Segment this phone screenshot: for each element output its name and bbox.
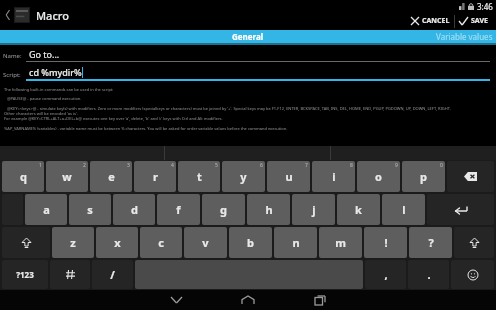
button[interactable]: h	[247, 194, 290, 225]
staticText: 6	[260, 162, 263, 169]
staticText: @PAUSE@ - pause command execution.	[7, 96, 82, 101]
button[interactable]: /	[92, 260, 133, 289]
staticText: l	[402, 202, 406, 217]
staticText: z	[70, 235, 76, 250]
button[interactable]: Backspace	[447, 161, 494, 192]
button[interactable]: ?	[409, 227, 452, 258]
button[interactable]: l	[382, 194, 425, 225]
staticText: r	[153, 169, 158, 184]
button[interactable]: t	[178, 161, 220, 192]
staticText: d	[131, 202, 138, 217]
button[interactable]: a	[25, 194, 67, 225]
button[interactable]: w	[46, 161, 88, 192]
button[interactable]: SAVE	[455, 14, 492, 28]
button[interactable]: d	[113, 194, 155, 225]
staticText: CANCEL	[422, 16, 450, 26]
button[interactable]: x	[96, 227, 138, 258]
staticText: ?123	[16, 269, 34, 280]
button[interactable]: Variable values	[436, 31, 496, 42]
staticText: @KEY=<keys>@ - simulate key(s) with modi…	[7, 106, 451, 111]
button[interactable]: Enter	[427, 194, 494, 225]
staticText: SAVE	[471, 16, 488, 26]
staticText: Name:	[3, 52, 26, 60]
button[interactable]: n	[274, 227, 317, 258]
button[interactable]: Shift	[454, 227, 494, 258]
button[interactable]: p	[402, 161, 445, 192]
button[interactable]: .	[408, 260, 449, 289]
button[interactable]: z	[52, 227, 94, 258]
staticText: Go to...	[29, 48, 60, 60]
button[interactable]: c	[140, 227, 182, 258]
staticText: ,	[384, 267, 388, 282]
button[interactable]: i	[312, 161, 355, 192]
button[interactable]: Recents	[307, 290, 333, 310]
button[interactable]: s	[69, 194, 111, 225]
button[interactable]: Back	[2, 2, 14, 28]
staticText: ?	[428, 235, 434, 250]
button[interactable]: k	[337, 194, 380, 225]
staticText: s	[87, 202, 93, 217]
staticText: For example @KEY=CTRL+ALT+a+DEL+b@ execu…	[4, 116, 223, 121]
staticText: /	[110, 267, 115, 282]
staticText: y	[240, 169, 247, 184]
staticText: w	[62, 169, 72, 184]
staticText: o	[375, 169, 382, 184]
staticText: c	[158, 235, 164, 250]
staticText: 8	[350, 162, 353, 169]
button[interactable]: r	[134, 161, 176, 192]
staticText: i	[332, 169, 336, 184]
button[interactable]: g	[202, 194, 245, 225]
button[interactable]: CANCEL	[407, 14, 454, 28]
button[interactable]: q	[2, 161, 44, 192]
staticText: 9	[395, 162, 398, 169]
button[interactable]: e	[90, 161, 132, 192]
staticText: v	[202, 235, 209, 250]
button[interactable]: Hide keyboard	[163, 290, 189, 310]
button[interactable]: y	[222, 161, 265, 192]
staticText: cd %mydir%	[29, 66, 82, 78]
staticText: 4	[171, 162, 174, 169]
button[interactable]: u	[267, 161, 310, 192]
staticText: t	[197, 169, 202, 184]
button[interactable]: o	[357, 161, 400, 192]
staticText: !	[384, 235, 388, 250]
staticText: a	[43, 202, 50, 217]
staticText: n	[292, 235, 300, 250]
staticText: e	[108, 169, 115, 184]
button[interactable]: Shift	[2, 227, 50, 258]
staticText: 2	[83, 162, 86, 169]
button[interactable]: m	[319, 227, 362, 258]
button[interactable]: ?123	[2, 260, 48, 289]
staticText: u	[285, 169, 293, 184]
button[interactable]: Change language	[50, 260, 90, 289]
staticText: Script:	[3, 71, 26, 79]
staticText: k	[355, 202, 362, 217]
button[interactable]: b	[229, 227, 272, 258]
button[interactable]: Emoji	[451, 260, 494, 289]
button[interactable]: cd %mydir%	[26, 66, 490, 81]
staticText: j	[312, 202, 316, 217]
button[interactable]: ,	[365, 260, 406, 289]
staticText: h	[265, 202, 273, 217]
staticText: 0	[440, 162, 443, 169]
button[interactable]: General	[232, 31, 264, 42]
staticText: g	[220, 202, 227, 217]
staticText: p	[420, 169, 427, 184]
button[interactable]: Home	[235, 290, 261, 310]
staticText: 5	[215, 162, 218, 169]
staticText: b	[247, 235, 254, 250]
button[interactable]: j	[292, 194, 335, 225]
button[interactable]: v	[184, 227, 227, 258]
staticText: q	[20, 169, 27, 184]
staticText: 1	[39, 162, 42, 169]
staticText: Macro	[36, 8, 69, 23]
button[interactable]: !	[364, 227, 407, 258]
button[interactable]: f	[157, 194, 200, 225]
staticText: The following built-in commands can be u…	[4, 87, 114, 92]
button[interactable]: Go to...	[26, 48, 490, 62]
